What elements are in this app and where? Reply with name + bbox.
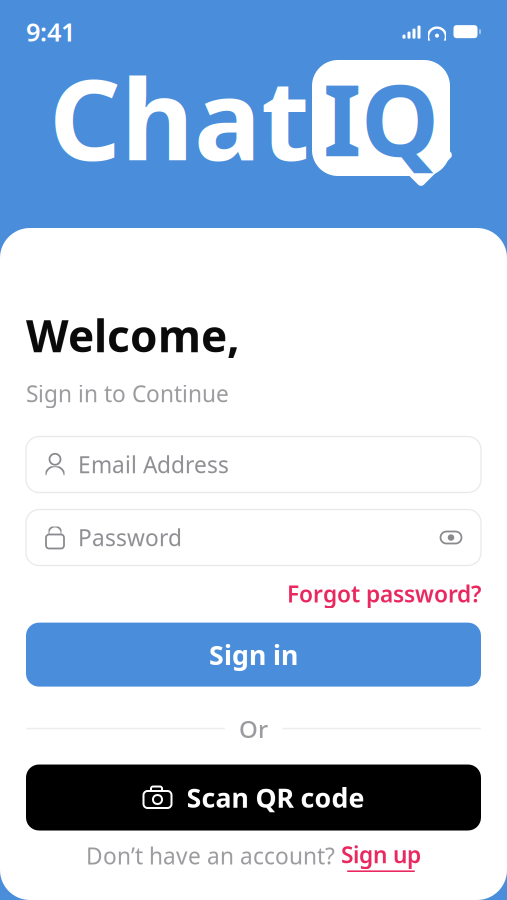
staticText: Chat (49, 43, 310, 191)
staticText: Sign in (209, 637, 298, 672)
staticText: IQ (323, 52, 439, 183)
button[interactable]: Password (26, 509, 481, 565)
staticText: Email Address (78, 449, 229, 480)
button[interactable]: Scan QR code (26, 764, 481, 830)
staticText: Welcome, (26, 306, 240, 364)
staticText: Forgot password? (287, 578, 481, 609)
button[interactable]: Sign in (26, 623, 481, 687)
staticText: 9:41 (26, 15, 75, 48)
staticText: Scan QR code (186, 780, 364, 815)
button[interactable]: Sign up (341, 839, 421, 872)
staticText: Don’t have an account? (86, 841, 341, 871)
staticText: Sign in to Continue (26, 378, 229, 408)
button[interactable]: Email Address (26, 436, 481, 492)
staticText: Password (78, 522, 182, 553)
staticText: Or (239, 713, 268, 744)
button[interactable]: Forgot password? (287, 578, 481, 609)
staticText: Sign up (341, 839, 421, 869)
